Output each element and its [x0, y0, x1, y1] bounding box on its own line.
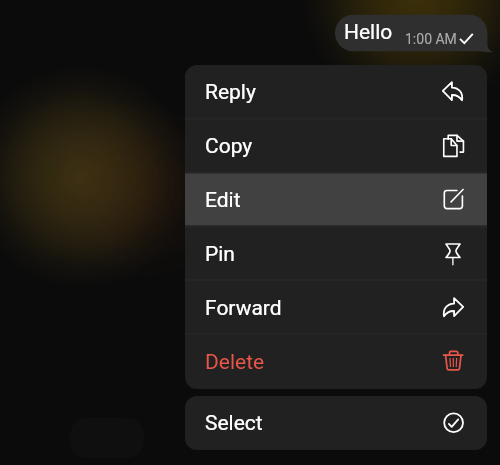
other: Reply: [441, 80, 465, 104]
button[interactable]: Edit: [185, 173, 487, 227]
staticText: Edit: [205, 188, 241, 213]
other: Forward: [441, 296, 465, 320]
other: Edit: [441, 188, 465, 212]
button[interactable]: Select: [185, 396, 487, 450]
other: Copy: [441, 134, 465, 158]
other: Select: [441, 411, 465, 435]
button[interactable]: Delete: [185, 335, 487, 389]
button[interactable]: Pin: [185, 227, 487, 281]
button[interactable]: Forward: [185, 281, 487, 335]
staticText: Copy: [205, 134, 253, 159]
other: Pin: [441, 242, 465, 266]
staticText: Forward: [205, 296, 282, 321]
other: Delete: [441, 348, 465, 372]
staticText: 1:00 AM: [405, 31, 457, 47]
staticText: Pin: [205, 242, 235, 267]
button[interactable]: Copy: [185, 119, 487, 173]
staticText: Delete: [205, 350, 265, 375]
staticText: Reply: [205, 80, 256, 105]
staticText: Hello: [344, 20, 393, 45]
button[interactable]: Reply: [185, 65, 487, 119]
staticText: Select: [205, 411, 263, 436]
